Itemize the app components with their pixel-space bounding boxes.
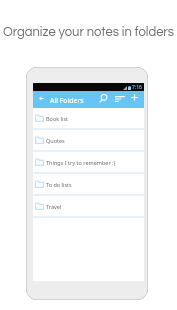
button[interactable]: Back <box>36 93 47 104</box>
button[interactable]: Book list <box>33 108 144 128</box>
button[interactable]: Travel <box>33 196 144 216</box>
staticText: Book list <box>46 115 69 122</box>
button[interactable]: Quotes <box>33 130 144 150</box>
staticText: Organize your notes in folders <box>0 25 177 38</box>
staticText: Travel <box>46 203 62 210</box>
staticText: To do lists <box>46 181 72 188</box>
staticText: Quotes <box>46 137 65 144</box>
staticText: 7:16 <box>132 84 142 91</box>
button[interactable]: Add folder <box>129 92 139 102</box>
button[interactable]: To do lists <box>33 174 144 194</box>
button[interactable]: Sort <box>113 94 126 104</box>
staticText: All Folders <box>50 96 84 105</box>
button[interactable]: Things I try to remember :) <box>33 152 144 172</box>
button[interactable]: Search <box>97 92 109 104</box>
staticText: Things I try to remember :) <box>46 159 116 166</box>
